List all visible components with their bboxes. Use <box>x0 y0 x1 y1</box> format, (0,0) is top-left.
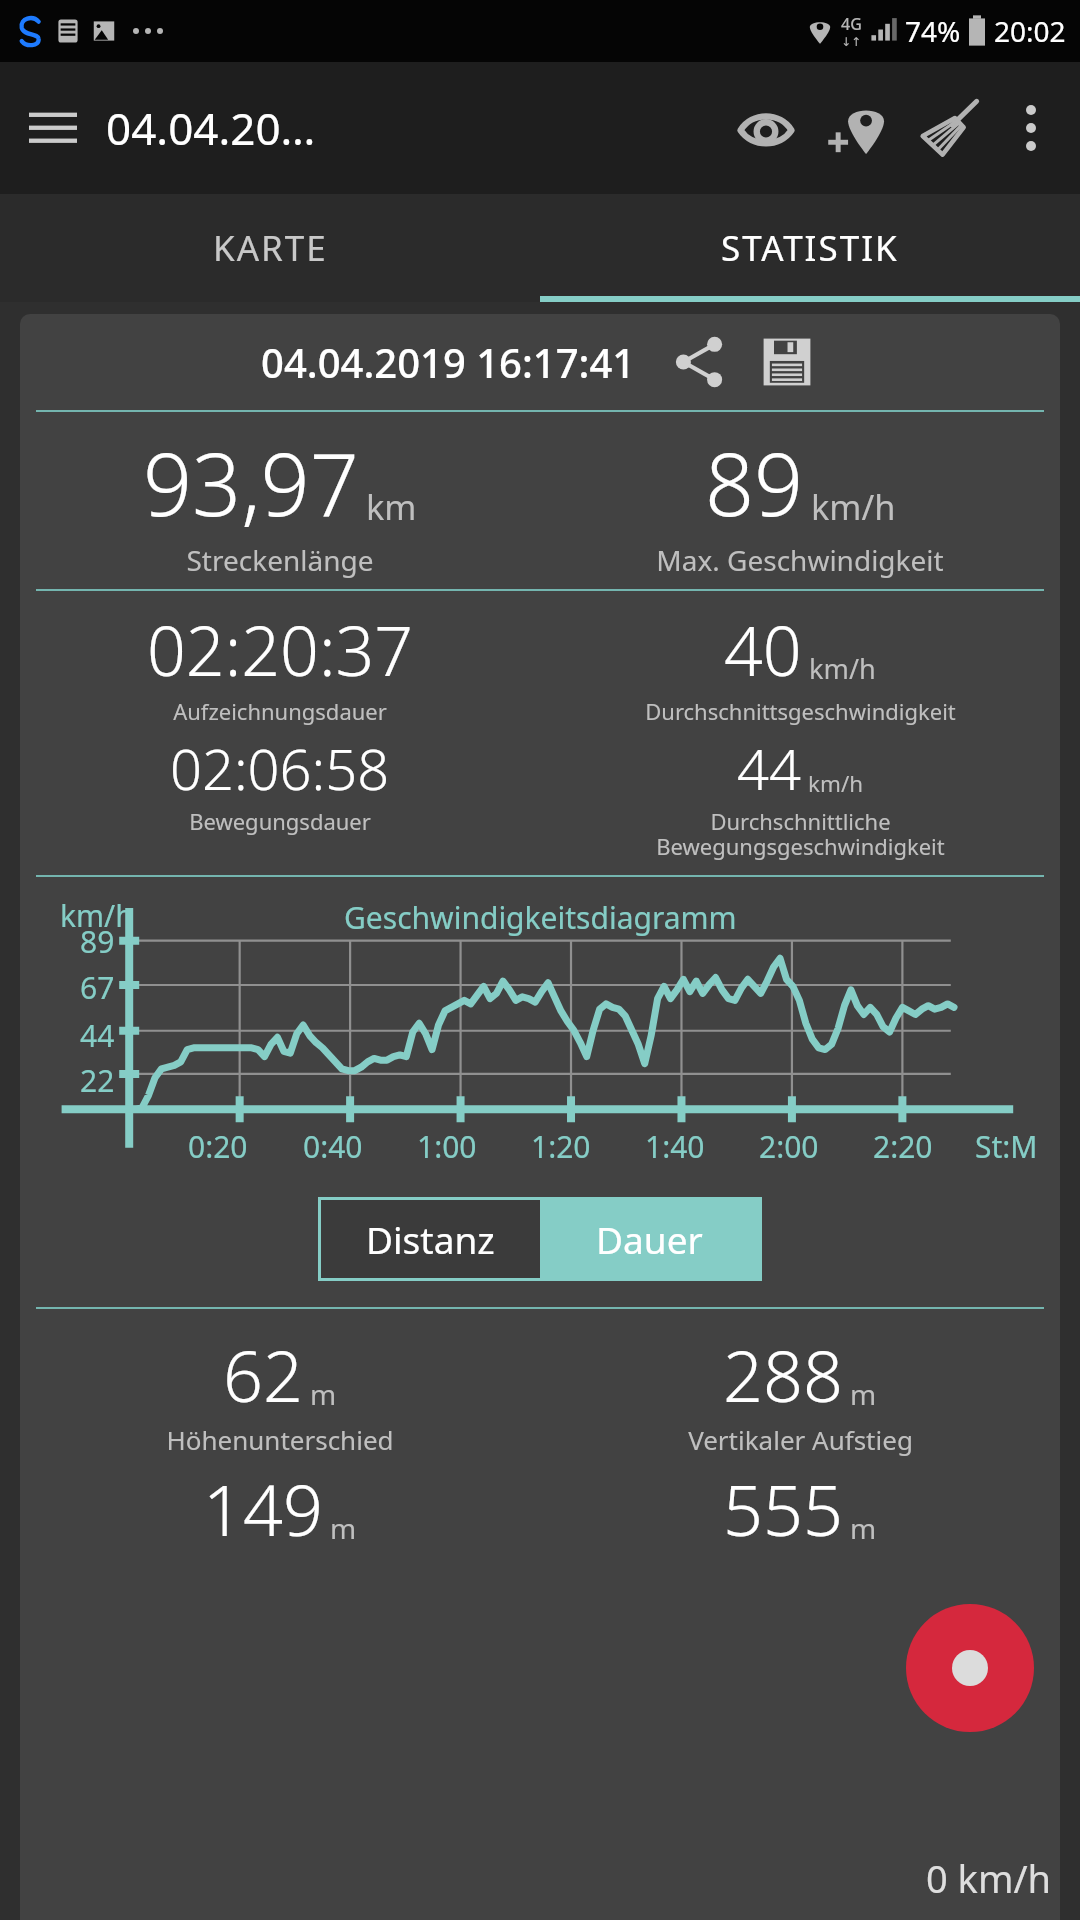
staticText: Höhenunterschied <box>166 1422 394 1457</box>
staticText: 1:40 <box>645 1126 705 1167</box>
staticText: m <box>850 1509 877 1547</box>
staticText: 22 <box>80 1060 115 1101</box>
staticText: km/h <box>808 768 864 799</box>
button[interactable]: Dauer <box>540 1200 759 1278</box>
staticText: 4G <box>841 13 862 35</box>
button[interactable]: Record <box>906 1604 1034 1732</box>
staticText: 02:06:58 <box>170 730 390 806</box>
staticText: 0:40 <box>303 1126 363 1167</box>
staticText: m <box>330 1509 357 1547</box>
staticText: km/h <box>811 483 896 530</box>
staticText: 2:20 <box>873 1126 933 1167</box>
staticText: Streckenlänge <box>186 541 374 579</box>
staticText: St:M <box>975 1126 1038 1167</box>
staticText: 0:20 <box>188 1126 248 1167</box>
button[interactable]: Menu <box>18 93 88 163</box>
staticText: Bewegungsdauer <box>189 806 371 836</box>
staticText: Vertikaler Aufstieg <box>688 1422 913 1457</box>
staticText: ↓↑ <box>841 35 862 49</box>
staticText: 04.04.20… <box>106 98 316 158</box>
staticText: 89 <box>80 921 115 962</box>
staticText: 44 <box>737 730 801 806</box>
button[interactable]: Add waypoint <box>818 88 898 168</box>
staticText: STATISTIK <box>721 224 899 272</box>
staticText: m <box>850 1375 877 1413</box>
staticText: Durchschnittsgeschwindigkeit <box>645 696 956 726</box>
staticText: 67 <box>80 967 115 1008</box>
staticText: 74% <box>905 12 961 50</box>
staticText: 555 <box>723 1461 843 1556</box>
staticText: 62 <box>223 1327 303 1422</box>
staticText: 288 <box>723 1327 843 1422</box>
staticText: 89 <box>705 424 804 541</box>
button[interactable]: Clear track <box>910 88 990 168</box>
staticText: m <box>310 1375 337 1413</box>
button[interactable]: More options <box>996 93 1066 163</box>
staticText: 0 km/h <box>926 1852 1052 1904</box>
button[interactable]: KARTE <box>0 194 540 302</box>
staticText: 20:02 <box>994 12 1066 50</box>
staticText: Geschwindigkeitsdiagramm <box>344 897 737 938</box>
button[interactable]: STATISTIK <box>540 194 1080 302</box>
staticText: km/h <box>809 650 876 687</box>
staticText: 04.04.2019 16:17:41 <box>261 335 636 389</box>
button[interactable]: Save <box>754 329 820 395</box>
staticText: 2:00 <box>759 1126 819 1167</box>
staticText: km <box>366 483 417 530</box>
staticText: Aufzeichnungsdauer <box>173 696 387 726</box>
staticText: 149 <box>203 1461 323 1556</box>
staticText: 44 <box>80 1015 115 1056</box>
staticText: Max. Geschwindigkeit <box>656 541 944 579</box>
button[interactable]: Show track <box>726 88 806 168</box>
staticText: 40 <box>724 603 802 696</box>
staticText: Distanz <box>366 1214 495 1264</box>
staticText: 1:00 <box>417 1126 477 1167</box>
staticText: 02:20:37 <box>147 603 414 696</box>
staticText: 1:20 <box>531 1126 591 1167</box>
button[interactable]: Share <box>666 329 732 395</box>
button[interactable]: Distanz <box>321 1200 540 1278</box>
staticText: KARTE <box>213 224 328 272</box>
staticText: 93,97 <box>143 424 359 541</box>
staticText: Dauer <box>596 1214 703 1264</box>
staticText: km/h <box>60 895 134 936</box>
staticText: Durchschnittliche Bewegungsgeschwindigke… <box>656 806 945 861</box>
